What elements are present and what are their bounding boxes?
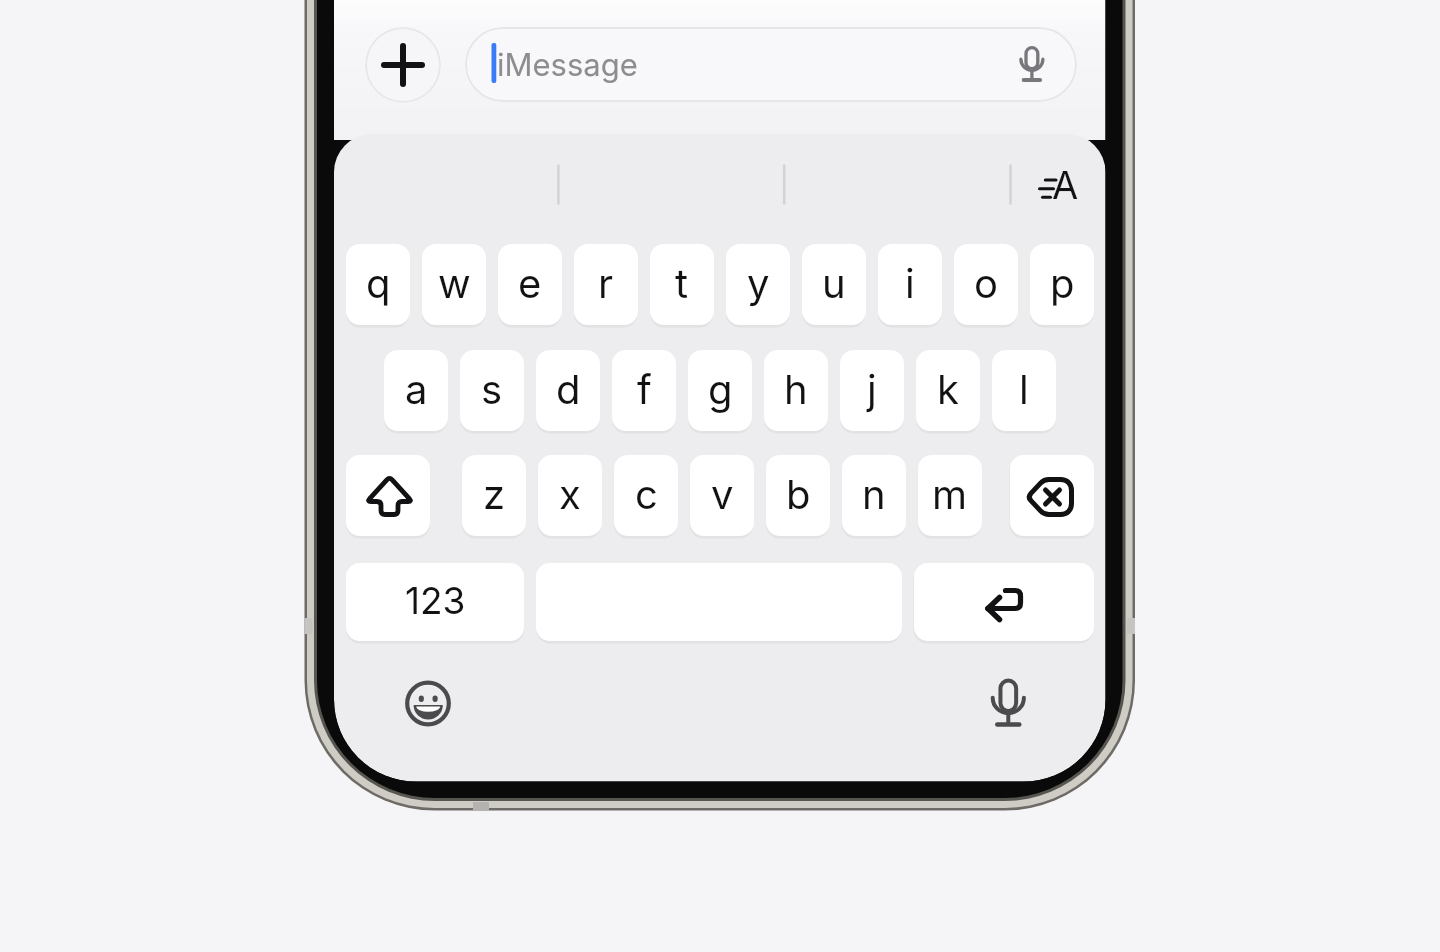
button[interactable]: o bbox=[954, 244, 1018, 325]
staticText: c bbox=[635, 470, 658, 518]
button[interactable]: v bbox=[690, 455, 754, 536]
staticText: s bbox=[481, 365, 503, 413]
staticText: r bbox=[598, 259, 614, 307]
button[interactable]: 123 bbox=[346, 563, 524, 641]
staticText: e bbox=[518, 259, 542, 307]
button[interactable] bbox=[346, 455, 430, 536]
button[interactable]: e bbox=[498, 244, 562, 325]
staticText: f bbox=[637, 365, 652, 413]
button[interactable]: z bbox=[462, 455, 526, 536]
button[interactable] bbox=[1010, 455, 1094, 536]
staticText: j bbox=[867, 365, 877, 413]
staticText: h bbox=[784, 365, 808, 413]
staticText: m bbox=[932, 470, 968, 518]
button[interactable]: q bbox=[346, 244, 410, 325]
button[interactable]: g bbox=[688, 350, 752, 431]
button[interactable]: x bbox=[538, 455, 602, 536]
button[interactable]: c bbox=[614, 455, 678, 536]
button[interactable]: k bbox=[916, 350, 980, 431]
button[interactable]: b bbox=[766, 455, 830, 536]
button[interactable]: l bbox=[992, 350, 1056, 431]
button[interactable]: iMessage bbox=[465, 27, 1077, 102]
staticText: p bbox=[1050, 259, 1075, 307]
button[interactable]: p bbox=[1030, 244, 1094, 325]
staticText: x bbox=[559, 470, 581, 518]
button[interactable]: i bbox=[878, 244, 942, 325]
button[interactable]: j bbox=[840, 350, 904, 431]
staticText: 123 bbox=[405, 578, 466, 623]
staticText: z bbox=[483, 470, 506, 518]
button[interactable] bbox=[365, 27, 441, 103]
button[interactable] bbox=[914, 563, 1094, 641]
button[interactable]: h bbox=[764, 350, 828, 431]
button[interactable]: A bbox=[1023, 160, 1079, 210]
button[interactable]: r bbox=[574, 244, 638, 325]
staticText: u bbox=[822, 259, 846, 307]
button[interactable]: t bbox=[650, 244, 714, 325]
button[interactable]: s bbox=[460, 350, 524, 431]
staticText: A bbox=[1052, 162, 1079, 208]
button[interactable]: a bbox=[384, 350, 448, 431]
staticText: t bbox=[675, 259, 689, 307]
staticText: i bbox=[905, 259, 915, 307]
staticText: v bbox=[711, 470, 734, 518]
staticText: o bbox=[974, 259, 998, 307]
staticText: k bbox=[937, 365, 959, 413]
button[interactable]: u bbox=[802, 244, 866, 325]
staticText: q bbox=[366, 259, 391, 307]
staticText: iMessage bbox=[497, 46, 638, 84]
button[interactable]: d bbox=[536, 350, 600, 431]
staticText: b bbox=[786, 470, 811, 518]
button[interactable]: m bbox=[918, 455, 982, 536]
staticText: l bbox=[1019, 365, 1029, 413]
button[interactable] bbox=[980, 670, 1040, 730]
button[interactable]: f bbox=[612, 350, 676, 431]
staticText: g bbox=[708, 365, 733, 413]
staticText: d bbox=[556, 365, 581, 413]
button[interactable] bbox=[398, 673, 458, 733]
staticText: n bbox=[862, 470, 886, 518]
button[interactable]: y bbox=[726, 244, 790, 325]
staticText: y bbox=[747, 259, 770, 307]
button[interactable]: w bbox=[422, 244, 486, 325]
button[interactable]: n bbox=[842, 455, 906, 536]
staticText: a bbox=[405, 365, 428, 413]
staticText: w bbox=[438, 259, 471, 307]
